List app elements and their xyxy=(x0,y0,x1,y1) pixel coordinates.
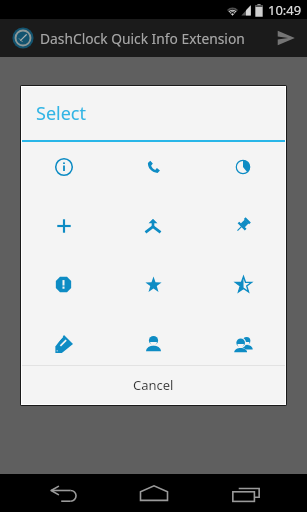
staticText: Select xyxy=(36,101,86,126)
button[interactable]: Recent apps xyxy=(214,474,278,512)
button[interactable]: Priority xyxy=(22,255,109,314)
button[interactable]: Home xyxy=(122,474,186,512)
button[interactable]: Half star xyxy=(197,255,285,314)
button[interactable]: Cancel xyxy=(22,366,285,404)
button[interactable]: Phone xyxy=(109,137,197,196)
button[interactable]: Person xyxy=(109,314,197,373)
staticText: Cancel xyxy=(133,376,174,394)
button[interactable]: Edit xyxy=(22,314,109,373)
staticText: 10:49 xyxy=(268,1,302,19)
button[interactable]: Back xyxy=(29,474,93,512)
staticText: DashClock Quick Info Extension xyxy=(40,29,245,48)
button[interactable]: Star xyxy=(109,255,197,314)
button[interactable]: People xyxy=(197,314,285,373)
button[interactable]: Add xyxy=(22,196,109,255)
button[interactable]: Send xyxy=(267,19,305,57)
button[interactable]: Pin xyxy=(197,196,285,255)
button[interactable]: Clock xyxy=(197,137,285,196)
button[interactable]: Info xyxy=(22,137,109,196)
button[interactable]: Merge xyxy=(109,196,197,255)
